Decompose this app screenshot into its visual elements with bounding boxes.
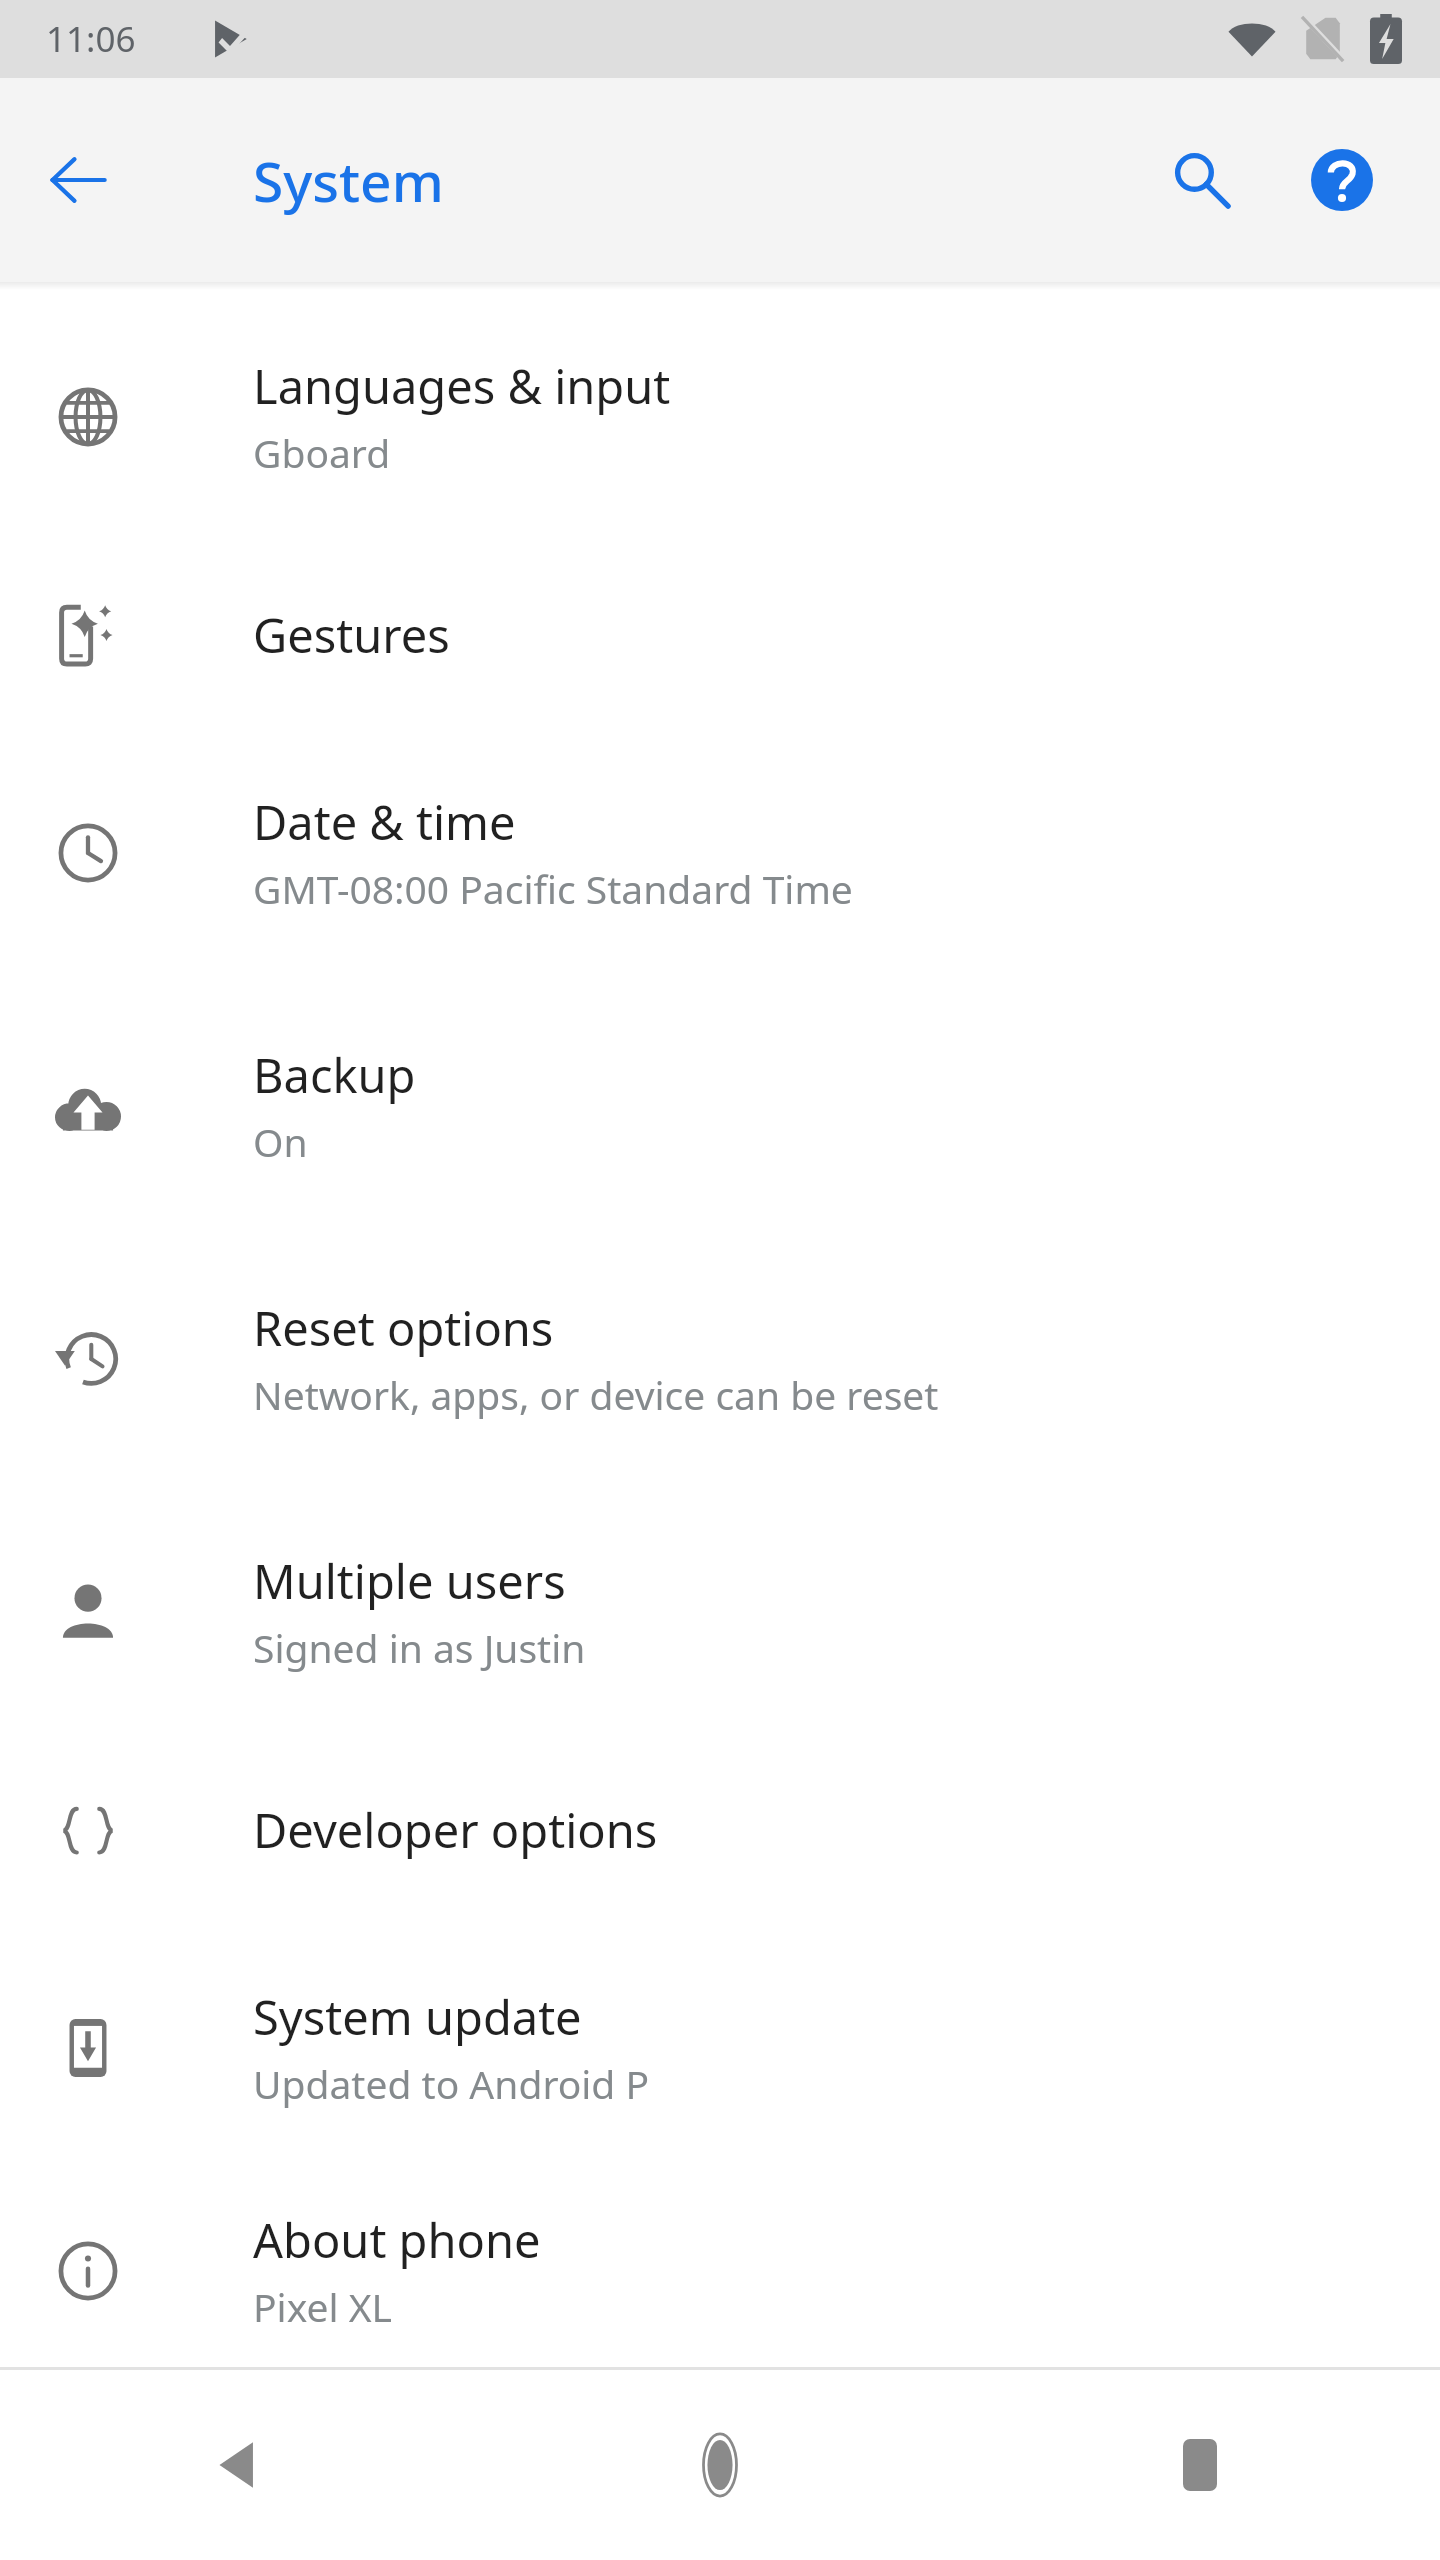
staticText: System xyxy=(253,143,444,218)
button[interactable]: Gestures xyxy=(0,543,1440,726)
button[interactable]: About phone xyxy=(0,2174,1440,2367)
button[interactable]: Multiple users xyxy=(0,1485,1440,1738)
button[interactable]: Navigate up xyxy=(20,122,136,238)
staticText: 11:06 xyxy=(46,15,136,63)
staticText: On xyxy=(253,1115,308,1168)
staticText: Date & time xyxy=(253,790,516,854)
button[interactable]: Home xyxy=(480,2370,960,2560)
button[interactable]: Search settings xyxy=(1140,118,1264,242)
staticText: Gboard xyxy=(253,426,391,479)
button[interactable]: Reset options xyxy=(0,1232,1440,1485)
button[interactable]: Backup xyxy=(0,979,1440,1232)
button[interactable]: System update xyxy=(0,1921,1440,2174)
button[interactable]: Help and feedback xyxy=(1280,118,1404,242)
staticText: Backup xyxy=(253,1043,416,1107)
button[interactable]: Date & time xyxy=(0,726,1440,979)
staticText: Developer options xyxy=(253,1798,658,1862)
staticText: GMT-08:00 Pacific Standard Time xyxy=(253,862,853,915)
button[interactable]: Developer options xyxy=(0,1738,1440,1921)
staticText: Languages & input xyxy=(253,354,671,418)
button[interactable]: Languages & input xyxy=(0,290,1440,543)
staticText: Multiple users xyxy=(253,1549,566,1613)
button[interactable]: Back xyxy=(0,2370,480,2560)
staticText: System update xyxy=(253,1985,582,2049)
staticText: Signed in as Justin xyxy=(253,1621,586,1674)
staticText: Gestures xyxy=(253,603,450,667)
staticText: Reset options xyxy=(253,1296,554,1360)
staticText: Pixel XL xyxy=(253,2280,392,2333)
staticText: Network, apps, or device can be reset xyxy=(253,1368,939,1421)
button[interactable]: Recent apps xyxy=(960,2370,1440,2560)
staticText: Updated to Android P xyxy=(253,2057,650,2110)
staticText: About phone xyxy=(253,2208,541,2272)
